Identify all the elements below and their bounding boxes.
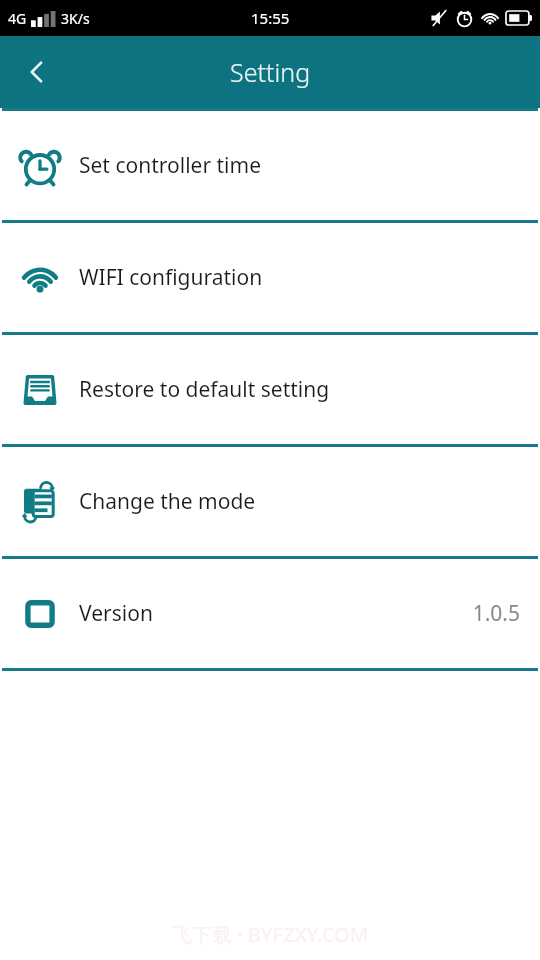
staticText: 飞下载 · BYFZXY.COM — [172, 921, 369, 948]
staticText: 1.0.5 — [472, 599, 520, 628]
button[interactable]: Back — [10, 45, 64, 99]
staticText: 4G — [8, 9, 27, 28]
button[interactable]: Set controller time — [0, 111, 540, 220]
staticText: Version — [79, 599, 153, 628]
staticText: Restore to default setting — [79, 375, 330, 404]
staticText: Set controller time — [79, 151, 262, 180]
button[interactable]: Version — [0, 559, 540, 668]
staticText: Setting — [230, 55, 311, 89]
button[interactable]: Restore to default setting — [0, 335, 540, 444]
button[interactable]: Change the mode — [0, 447, 540, 556]
staticText: WIFI configuration — [79, 263, 263, 292]
staticText: 3K/s — [61, 9, 90, 28]
staticText: 15:55 — [251, 8, 290, 28]
button[interactable]: WIFI configuration — [0, 223, 540, 332]
staticText: Change the mode — [79, 487, 256, 516]
